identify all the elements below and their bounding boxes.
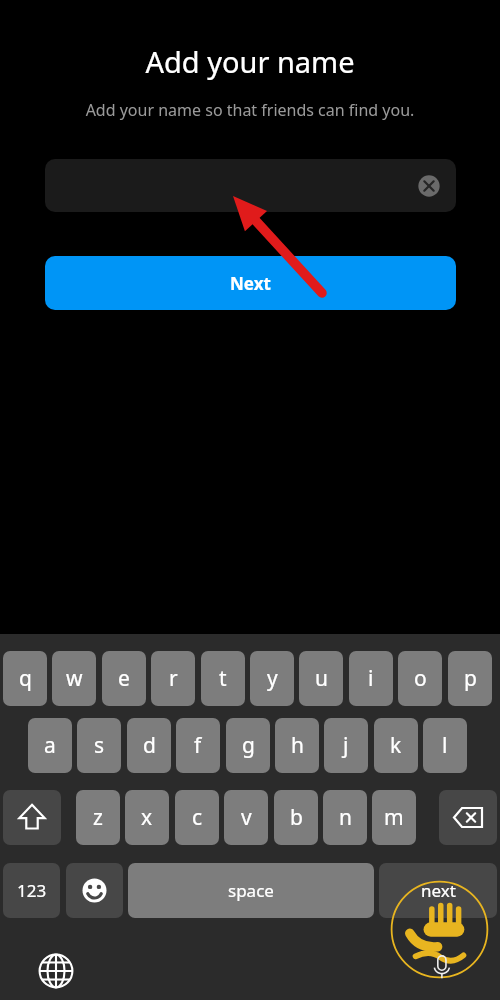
button[interactable]: a xyxy=(28,718,72,773)
button[interactable]: w xyxy=(52,651,96,706)
button[interactable]: r xyxy=(151,651,195,706)
staticText: u xyxy=(315,664,328,693)
button[interactable]: v xyxy=(224,790,268,845)
button[interactable]: Clear text xyxy=(45,159,456,212)
staticText: i xyxy=(368,664,374,693)
button[interactable]: j xyxy=(324,718,368,773)
button[interactable]: i xyxy=(349,651,393,706)
button[interactable]: o xyxy=(398,651,442,706)
staticText: Next xyxy=(230,272,271,295)
button[interactable]: z xyxy=(76,790,120,845)
button[interactable]: d xyxy=(127,718,171,773)
staticText: 123 xyxy=(17,879,47,902)
staticText: x xyxy=(141,803,153,832)
button[interactable]: c xyxy=(175,790,219,845)
button[interactable]: Clear text xyxy=(416,173,442,199)
staticText: z xyxy=(93,803,103,832)
staticText: t xyxy=(219,664,227,693)
staticText: Add your name so that friends can find y… xyxy=(0,99,500,121)
staticText: y xyxy=(267,664,278,693)
staticText: c xyxy=(192,803,203,832)
button[interactable]: Change language xyxy=(36,951,76,991)
button[interactable]: t xyxy=(201,651,245,706)
staticText: o xyxy=(414,664,427,693)
button[interactable]: m xyxy=(372,790,416,845)
staticText: g xyxy=(242,731,255,760)
button[interactable]: s xyxy=(77,718,121,773)
staticText: v xyxy=(241,803,252,832)
staticText: space xyxy=(228,879,274,902)
staticText: w xyxy=(66,664,83,693)
button[interactable]: k xyxy=(374,718,418,773)
staticText: h xyxy=(291,731,304,760)
button[interactable]: q xyxy=(3,651,47,706)
button[interactable]: Backspace xyxy=(439,790,497,845)
staticText: n xyxy=(339,803,352,832)
staticText: f xyxy=(194,731,202,760)
staticText: s xyxy=(94,731,105,760)
staticText: k xyxy=(390,731,402,760)
staticText: b xyxy=(290,803,303,832)
button[interactable]: g xyxy=(226,718,270,773)
button[interactable]: x xyxy=(125,790,169,845)
staticText: next xyxy=(421,879,456,902)
button[interactable]: next xyxy=(379,863,497,918)
staticText: m xyxy=(384,803,404,832)
button[interactable]: Shift xyxy=(3,790,61,845)
button[interactable]: u xyxy=(299,651,343,706)
staticText: l xyxy=(442,731,448,760)
staticText: j xyxy=(343,731,349,760)
button[interactable]: f xyxy=(176,718,220,773)
button[interactable]: p xyxy=(448,651,492,706)
button[interactable]: Next xyxy=(45,256,456,310)
button[interactable]: Emoji xyxy=(66,863,123,918)
staticText: e xyxy=(118,664,130,693)
button[interactable]: b xyxy=(274,790,318,845)
staticText: a xyxy=(44,731,56,760)
button[interactable]: space xyxy=(128,863,374,918)
staticText: d xyxy=(143,731,156,760)
staticText: Add your name xyxy=(0,42,500,81)
button[interactable]: l xyxy=(423,718,467,773)
staticText: q xyxy=(19,664,32,693)
button[interactable]: y xyxy=(250,651,294,706)
button[interactable]: n xyxy=(323,790,367,845)
staticText: p xyxy=(464,664,477,693)
staticText: r xyxy=(169,664,178,693)
button[interactable]: h xyxy=(275,718,319,773)
button[interactable]: 123 xyxy=(3,863,60,918)
button[interactable]: e xyxy=(102,651,146,706)
